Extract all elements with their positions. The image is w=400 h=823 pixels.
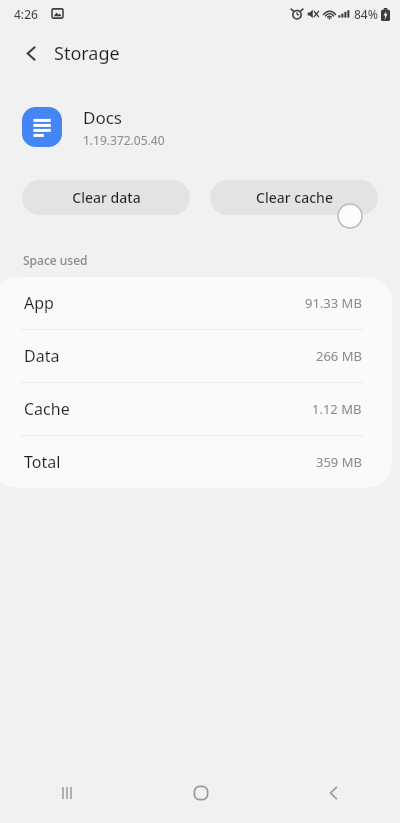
staticText: 4:26 — [14, 6, 38, 22]
button[interactable]: Clear cache — [210, 180, 378, 215]
button[interactable]: Cache — [0, 383, 392, 435]
staticText: 1.19.372.05.40 — [83, 132, 165, 148]
staticText: Space used — [23, 252, 88, 268]
button[interactable]: App — [0, 277, 392, 329]
staticText: 91.33 MB — [305, 294, 362, 312]
button[interactable]: Back — [267, 763, 400, 823]
button[interactable]: Data — [0, 330, 392, 382]
staticText: Clear cache — [256, 188, 333, 207]
button[interactable]: Docs — [0, 100, 400, 154]
staticText: 266 MB — [316, 347, 362, 365]
button[interactable]: Clear data — [22, 180, 190, 215]
staticText: Cache — [24, 398, 70, 420]
staticText: 359 MB — [316, 453, 362, 471]
button[interactable]: Home — [134, 763, 267, 823]
button[interactable]: Back — [11, 33, 51, 73]
staticText: App — [24, 292, 54, 314]
staticText: Clear data — [72, 188, 141, 207]
staticText: Data — [24, 345, 60, 367]
button[interactable]: Total — [0, 436, 392, 488]
staticText: Total — [24, 451, 61, 473]
staticText: 84% — [354, 6, 378, 22]
staticText: 1.12 MB — [312, 400, 362, 418]
button[interactable]: Recent apps — [0, 763, 134, 823]
staticText: Storage — [54, 41, 120, 66]
staticText: Docs — [83, 106, 122, 129]
